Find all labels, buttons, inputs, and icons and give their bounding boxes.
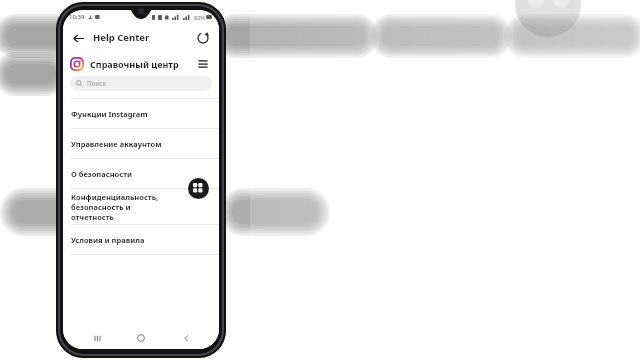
button[interactable]: Конфиденциальность, безопасность и отчет… — [63, 189, 219, 224]
staticText: Условия и правила — [71, 235, 145, 245]
staticText: Управление аккаунтом — [71, 139, 162, 149]
staticText: 10:39 — [69, 13, 85, 21]
button[interactable]: Refresh — [194, 29, 212, 47]
button[interactable]: Menu — [194, 55, 212, 73]
staticText: Help Center — [93, 31, 150, 44]
button[interactable]: Поиск — [70, 76, 212, 91]
staticText: Справочный центр — [90, 58, 179, 70]
button[interactable]: Управление аккаунтом — [63, 129, 219, 158]
staticText: Поиск — [87, 79, 107, 88]
button[interactable]: Apps grid — [188, 178, 209, 199]
button[interactable]: Recents — [86, 327, 108, 349]
button[interactable]: Условия и правила — [63, 225, 219, 254]
staticText: О безопасности — [71, 169, 132, 179]
button[interactable]: Back — [175, 327, 197, 349]
button[interactable]: Функции Instagram — [63, 99, 219, 128]
button[interactable]: Back — [70, 30, 86, 46]
staticText: Конфиденциальность, безопасность и отчет… — [71, 192, 211, 222]
staticText: 80% — [194, 14, 205, 21]
button[interactable]: О безопасности — [63, 159, 219, 188]
button[interactable]: Home — [130, 327, 152, 349]
staticText: Функции Instagram — [71, 109, 148, 119]
